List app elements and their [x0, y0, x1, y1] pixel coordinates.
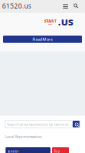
staticText: .us	[22, 2, 31, 10]
button[interactable]: Menu	[62, 3, 68, 9]
button[interactable]: Search	[73, 121, 80, 128]
staticText: 61520	[2, 2, 22, 10]
staticText: .US	[58, 16, 73, 28]
button[interactable]: Read More	[3, 36, 82, 43]
button[interactable]: 61520	[0, 0, 31, 12]
staticText: Local Representatives	[5, 134, 42, 139]
button[interactable]: Search	[73, 3, 79, 9]
staticText: Read More	[32, 36, 52, 42]
staticText: Rep	[54, 150, 60, 153]
button[interactable]: Representative	[52, 147, 69, 153]
staticText: Search area businesses by name or catego…	[7, 121, 73, 127]
staticText: HERE	[48, 24, 52, 25]
staticText: START	[44, 18, 56, 24]
staticText: Senator	[7, 150, 18, 153]
button[interactable]: Senator	[5, 147, 50, 153]
